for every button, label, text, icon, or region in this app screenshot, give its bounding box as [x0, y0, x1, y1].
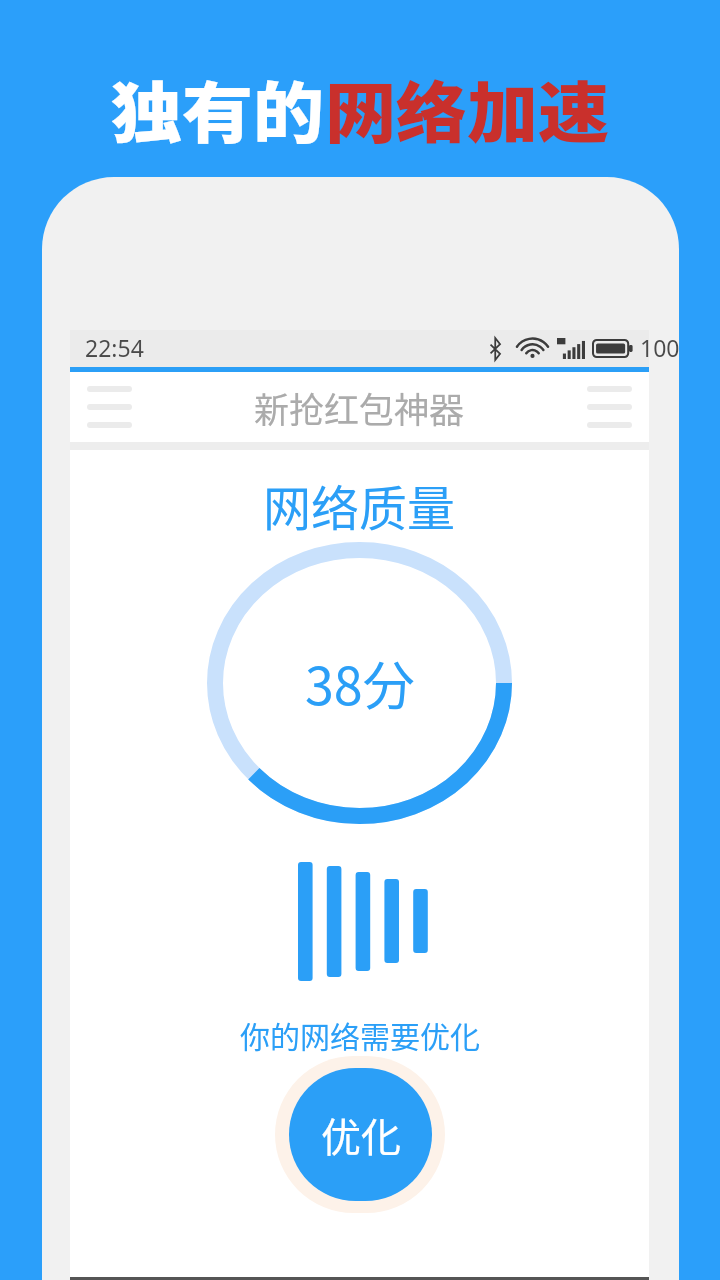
staticText: 38分 [305, 645, 415, 720]
staticText: 你的网络需要优化 [240, 1013, 480, 1056]
staticText: 网络加速 [325, 61, 610, 156]
staticText: 独有的 [111, 61, 325, 156]
button[interactable]: Menu [87, 386, 132, 428]
staticText: 新抢红包神器 [254, 382, 465, 433]
staticText: 优化 [321, 1106, 401, 1164]
staticText: 22:54 [85, 332, 144, 363]
staticText: 100 [640, 332, 679, 363]
button[interactable]: More options [587, 386, 632, 428]
staticText: 网络质量 [263, 470, 456, 540]
button[interactable]: 优化 [275, 1056, 445, 1213]
